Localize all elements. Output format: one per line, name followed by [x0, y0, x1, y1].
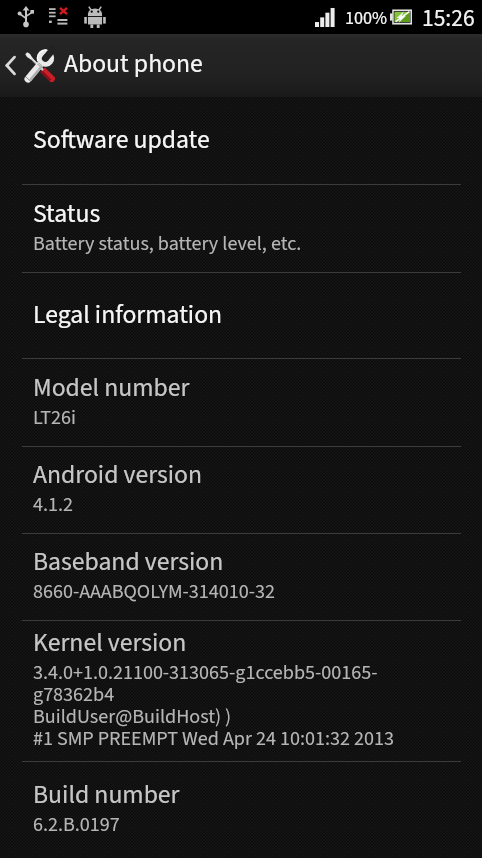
staticText: 15:26 [422, 2, 475, 35]
button[interactable]: Model number [0, 359, 482, 446]
button[interactable]: Navigate up [0, 34, 482, 97]
staticText: 100% [345, 5, 388, 31]
button[interactable]: Kernel version [0, 621, 482, 761]
staticText: Model number [33, 370, 190, 407]
staticText: 8660-AAABQOLYM-314010-32 [33, 577, 275, 606]
staticText: 3.4.0+1.0.21100-313065-g1ccebb5-00165- g… [33, 658, 394, 753]
staticText: Battery status, battery level, etc. [33, 229, 302, 258]
staticText: Build number [33, 777, 180, 814]
button[interactable]: Software update [0, 97, 482, 184]
staticText: 6.2.B.0197 [33, 810, 120, 839]
button[interactable]: Baseband version [0, 534, 482, 620]
staticText: Legal information [33, 297, 223, 334]
staticText: Kernel version [33, 625, 187, 662]
staticText: Android version [33, 457, 203, 494]
staticText: Software update [33, 122, 210, 159]
button[interactable]: Android version [0, 447, 482, 533]
staticText: 4.1.2 [33, 490, 73, 519]
staticText: Baseband version [33, 544, 224, 581]
staticText: About phone [64, 46, 203, 83]
button[interactable]: Legal information [0, 273, 482, 358]
button[interactable]: Build number [0, 762, 482, 858]
button[interactable]: Status [0, 185, 482, 272]
staticText: LT26i [33, 403, 77, 432]
staticText: Status [33, 196, 101, 233]
